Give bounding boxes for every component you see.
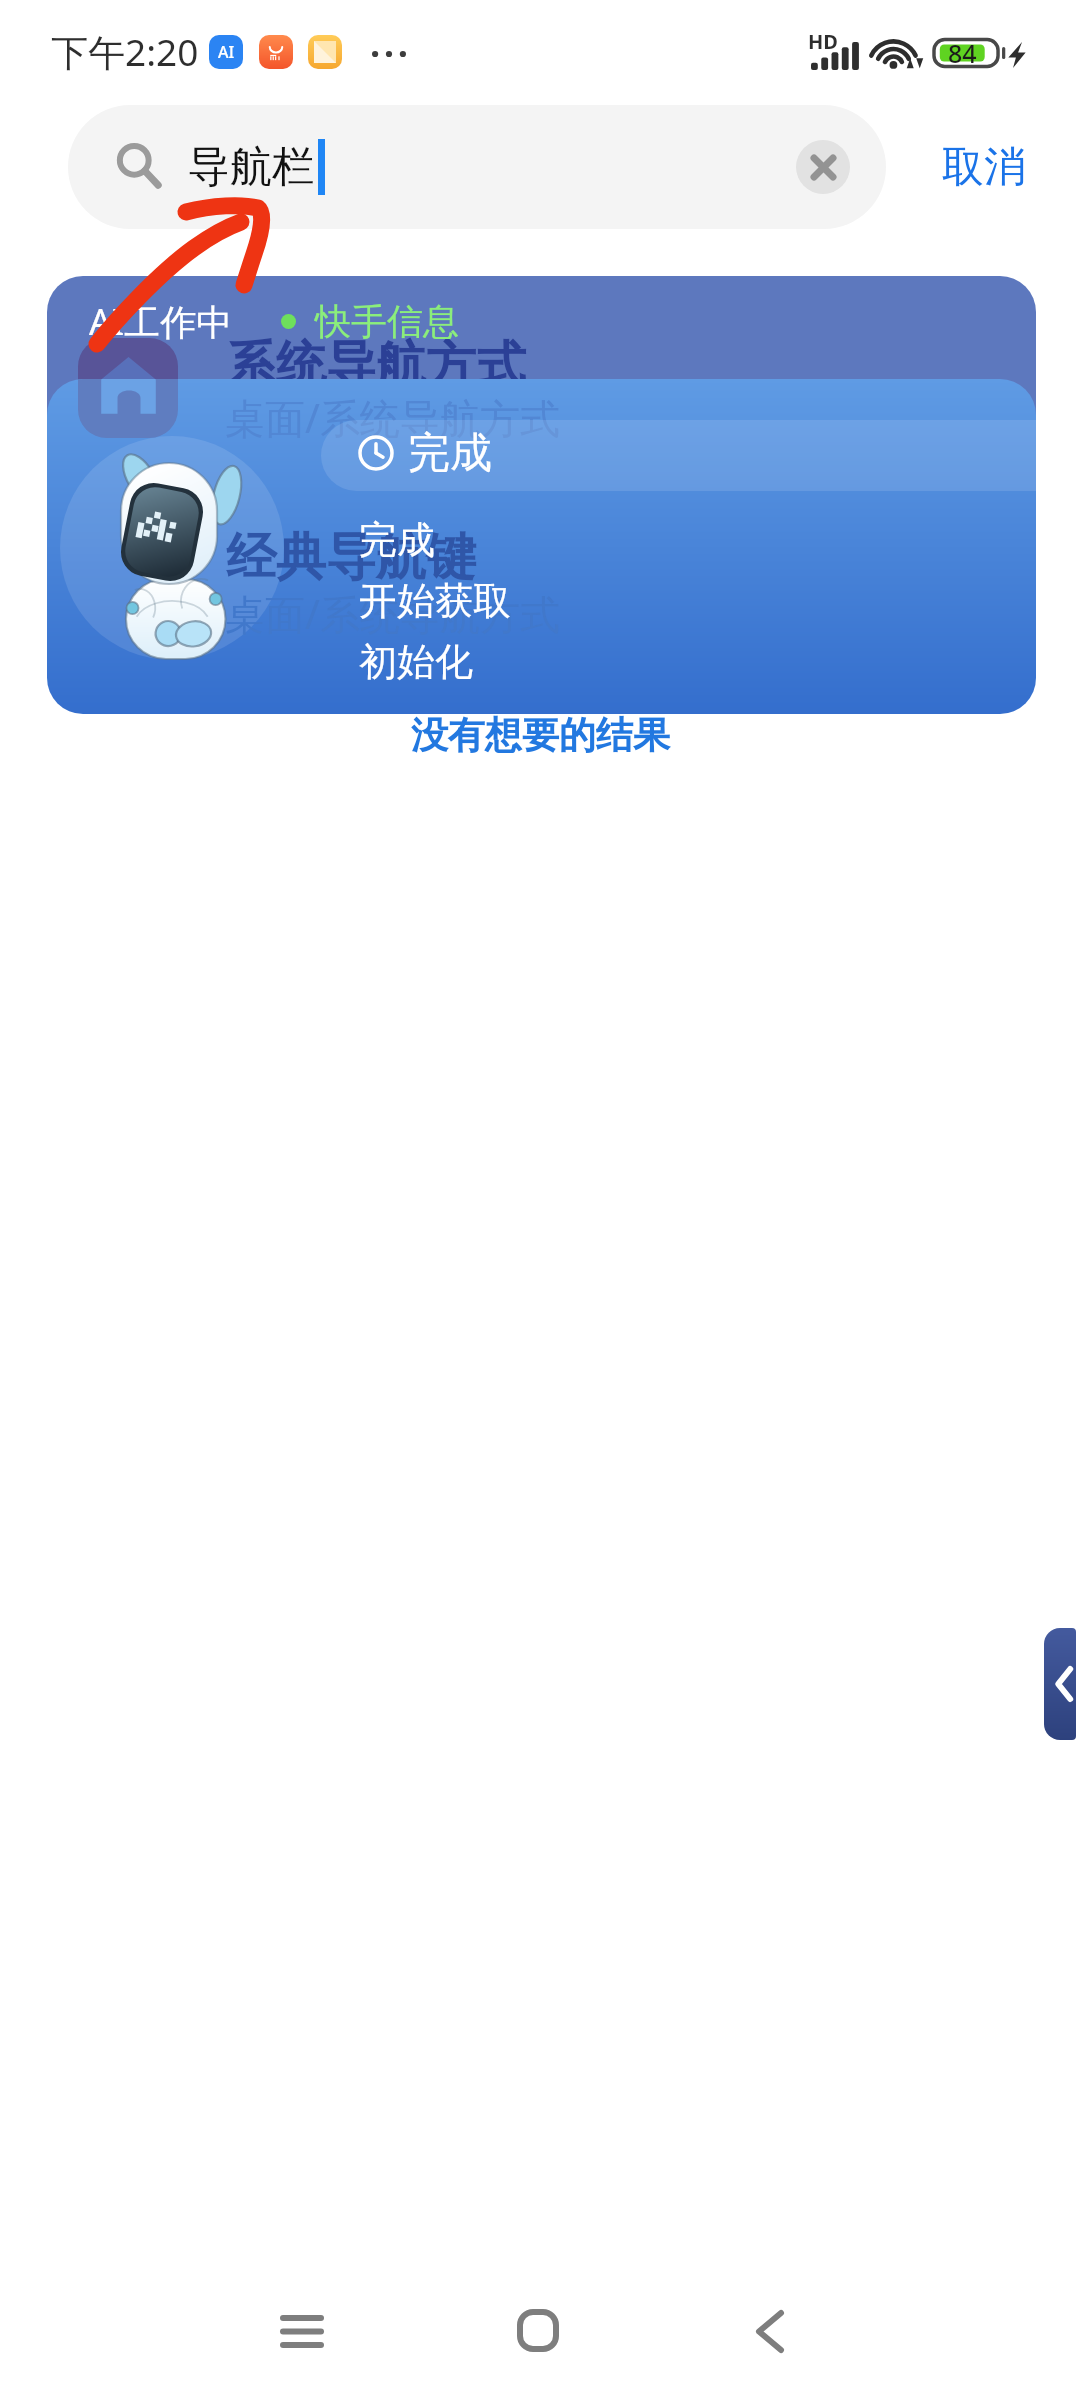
staticText: 桌面/系统导航方式 (225, 390, 560, 445)
staticText: 开始获取 (359, 577, 511, 625)
button[interactable]: 完成 (321, 420, 1036, 491)
staticText: 没有想要的结果 (411, 712, 670, 759)
button[interactable]: 取消 (924, 123, 1044, 212)
button[interactable]: Clear search (796, 140, 850, 194)
staticText: 初始化 (359, 638, 473, 686)
staticText: HD (808, 28, 838, 55)
button[interactable]: 桌面/系统导航方式 (60, 326, 1023, 442)
staticText: 完成 (408, 427, 492, 480)
staticText: AI工作中 (89, 297, 233, 346)
staticText: 经典导航键 (226, 526, 476, 589)
button[interactable]: 经典导航键 (60, 522, 1023, 638)
staticText: 桌面/系统导航方式 (225, 586, 560, 641)
staticText: 导航栏 (188, 141, 314, 194)
staticText: 完成 (359, 516, 435, 564)
staticText: AI (218, 41, 235, 63)
button[interactable]: Home (418, 2265, 658, 2395)
staticText: 系统导航方式 (226, 334, 526, 397)
button[interactable]: Recent apps (182, 2267, 422, 2397)
button[interactable]: Expand panel (1044, 1628, 1076, 1740)
button[interactable]: 导航栏 (68, 105, 886, 229)
staticText: 84 (948, 36, 977, 70)
button[interactable]: 没有想要的结果 (385, 702, 696, 769)
button[interactable]: Back (650, 2266, 890, 2396)
staticText: 下午2:20 (51, 26, 199, 77)
staticText: 取消 (942, 141, 1026, 194)
staticText: 快手信息 (315, 299, 459, 344)
